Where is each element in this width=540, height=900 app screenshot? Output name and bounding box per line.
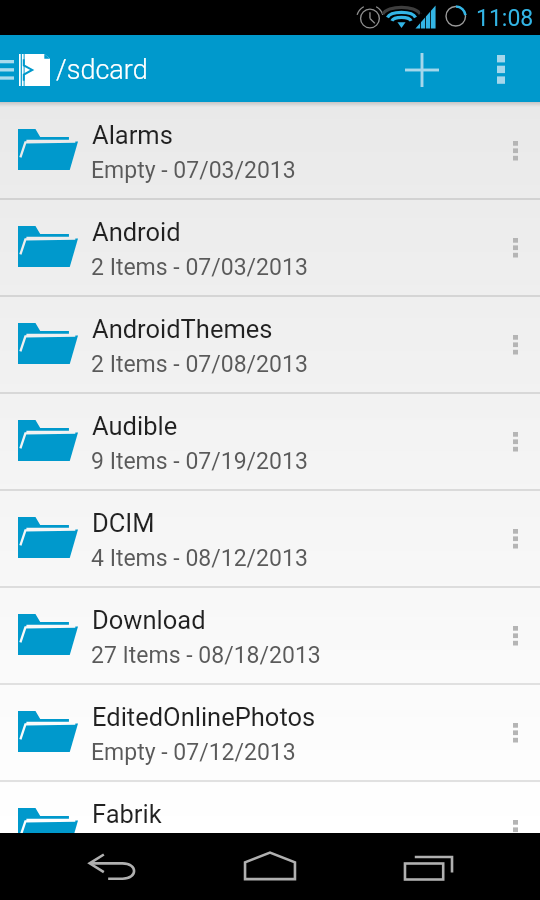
staticText: 2 Items - 07/03/2013 [91, 254, 308, 281]
staticText: Audible [92, 411, 178, 441]
button[interactable]: Home [205, 833, 335, 900]
staticText: /sdcard [56, 54, 148, 86]
button[interactable]: Item options [484, 296, 540, 392]
button[interactable]: Android [0, 199, 540, 295]
button[interactable]: Item options [484, 199, 540, 295]
staticText: 2 Items - 07/08/2013 [91, 351, 308, 378]
button[interactable]: EditedOnlinePhotos [0, 684, 540, 780]
button[interactable]: Recent apps [363, 833, 493, 900]
staticText: EditedOnlinePhotos [92, 702, 316, 732]
button[interactable]: More options [472, 35, 540, 102]
button[interactable]: Item options [484, 781, 540, 833]
button[interactable]: Alarms [0, 102, 540, 198]
staticText: Alarms [92, 120, 173, 150]
button[interactable]: Item options [484, 490, 540, 586]
button[interactable]: Item options [484, 684, 540, 780]
staticText: Empty - 07/12/2013 [91, 739, 296, 766]
button[interactable]: Item options [484, 102, 540, 198]
staticText: 4 Items - 08/12/2013 [91, 545, 308, 572]
button[interactable]: Add [388, 35, 456, 102]
staticText: Empty - 07/03/2013 [91, 157, 296, 184]
staticText: Android [92, 217, 181, 247]
button[interactable]: Item options [484, 587, 540, 683]
staticText: 11:08 [476, 5, 534, 32]
button[interactable]: Item options [484, 393, 540, 489]
button[interactable]: Navigate up [0, 35, 56, 102]
staticText: 9 Items - 07/19/2013 [91, 448, 308, 475]
button[interactable]: Back [47, 833, 177, 900]
staticText: AndroidThemes [92, 314, 273, 344]
button[interactable]: AndroidThemes [0, 296, 540, 392]
button[interactable]: Download [0, 587, 540, 683]
staticText: DCIM [92, 508, 155, 538]
button[interactable]: Fabrik [0, 781, 540, 833]
staticText: Download [92, 605, 206, 635]
button[interactable]: DCIM [0, 490, 540, 586]
button[interactable]: Audible [0, 393, 540, 489]
staticText: Fabrik [92, 799, 162, 829]
staticText: 27 Items - 08/18/2013 [91, 642, 321, 669]
